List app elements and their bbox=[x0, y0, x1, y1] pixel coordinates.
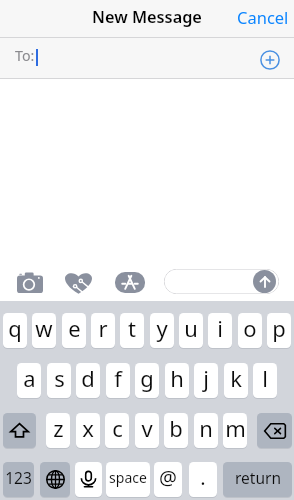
button[interactable]: m bbox=[223, 413, 247, 448]
staticText: y bbox=[156, 313, 168, 343]
button[interactable]: a bbox=[17, 363, 41, 398]
staticText: q bbox=[8, 313, 22, 343]
button[interactable]: c bbox=[105, 413, 129, 448]
button[interactable]: . bbox=[189, 462, 217, 497]
staticText: l bbox=[262, 363, 268, 393]
button[interactable]: f bbox=[106, 363, 130, 398]
button[interactable]: Camera bbox=[17, 272, 43, 293]
staticText: . bbox=[200, 464, 206, 491]
staticText: f bbox=[114, 363, 122, 393]
staticText: j bbox=[203, 363, 209, 393]
staticText: Cancel bbox=[237, 6, 289, 28]
button[interactable]: u bbox=[179, 313, 203, 348]
button[interactable]: Shift bbox=[3, 413, 36, 448]
staticText: To: bbox=[15, 46, 35, 65]
button[interactable]: s bbox=[47, 363, 71, 398]
button[interactable]: t bbox=[120, 313, 144, 348]
staticText: v bbox=[141, 413, 153, 443]
staticText: g bbox=[140, 363, 154, 393]
button[interactable]: j bbox=[194, 363, 218, 398]
button[interactable]: b bbox=[164, 413, 188, 448]
button[interactable]: e bbox=[62, 313, 86, 348]
button[interactable]: i bbox=[208, 313, 232, 348]
staticText: @ bbox=[159, 464, 177, 491]
staticText: p bbox=[272, 313, 286, 343]
staticText: s bbox=[54, 363, 65, 393]
button[interactable]: Cancel bbox=[229, 4, 294, 34]
button[interactable]: g bbox=[135, 363, 159, 398]
staticText: space bbox=[109, 468, 147, 487]
staticText: t bbox=[128, 313, 136, 343]
button[interactable]: q bbox=[3, 313, 27, 348]
button[interactable]: d bbox=[76, 363, 100, 398]
button[interactable]: Backspace bbox=[257, 413, 292, 448]
button[interactable]: Message field bbox=[164, 269, 279, 294]
button[interactable]: r bbox=[91, 313, 115, 348]
staticText: New Message bbox=[92, 6, 202, 28]
staticText: o bbox=[243, 313, 257, 343]
staticText: h bbox=[170, 363, 184, 393]
button[interactable]: n bbox=[194, 413, 218, 448]
staticText: x bbox=[82, 413, 94, 443]
button[interactable]: Switch keyboard bbox=[40, 462, 70, 497]
staticText: k bbox=[230, 363, 242, 393]
button[interactable]: return bbox=[223, 462, 292, 497]
button[interactable]: Digital Touch bbox=[65, 272, 92, 294]
staticText: return bbox=[235, 467, 281, 488]
staticText: b bbox=[169, 413, 183, 443]
staticText: 123 bbox=[5, 467, 32, 488]
staticText: d bbox=[81, 363, 95, 393]
staticText: r bbox=[98, 313, 108, 343]
button[interactable]: l bbox=[253, 363, 277, 398]
button[interactable]: h bbox=[165, 363, 189, 398]
staticText: w bbox=[35, 313, 53, 343]
button[interactable]: o bbox=[238, 313, 262, 348]
staticText: e bbox=[68, 313, 81, 343]
button[interactable]: y bbox=[150, 313, 174, 348]
staticText: a bbox=[23, 363, 36, 393]
button[interactable]: space bbox=[106, 462, 150, 497]
staticText: m bbox=[225, 413, 246, 443]
button[interactable]: Add contact bbox=[260, 50, 280, 70]
button[interactable]: p bbox=[267, 313, 291, 348]
button[interactable]: v bbox=[135, 413, 159, 448]
staticText: u bbox=[184, 313, 198, 343]
button[interactable]: x bbox=[76, 413, 100, 448]
staticText: n bbox=[199, 413, 213, 443]
button[interactable]: z bbox=[46, 413, 70, 448]
button[interactable]: w bbox=[32, 313, 56, 348]
button[interactable]: Send bbox=[253, 270, 276, 293]
staticText: i bbox=[217, 313, 223, 343]
staticText: z bbox=[53, 413, 64, 443]
button[interactable]: 123 bbox=[3, 462, 34, 497]
button[interactable]: @ bbox=[154, 462, 182, 497]
staticText: c bbox=[112, 413, 123, 443]
button[interactable]: k bbox=[224, 363, 248, 398]
button[interactable]: Apps bbox=[115, 272, 145, 293]
button[interactable]: Dictate bbox=[75, 462, 102, 497]
